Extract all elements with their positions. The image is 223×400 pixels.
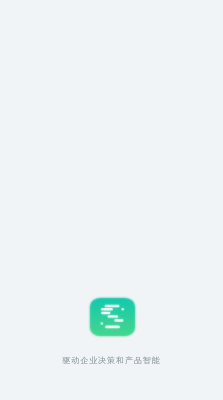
button[interactable]: App logo [90, 298, 135, 336]
staticText: 驱动企业决策和产品智能 [62, 355, 161, 365]
